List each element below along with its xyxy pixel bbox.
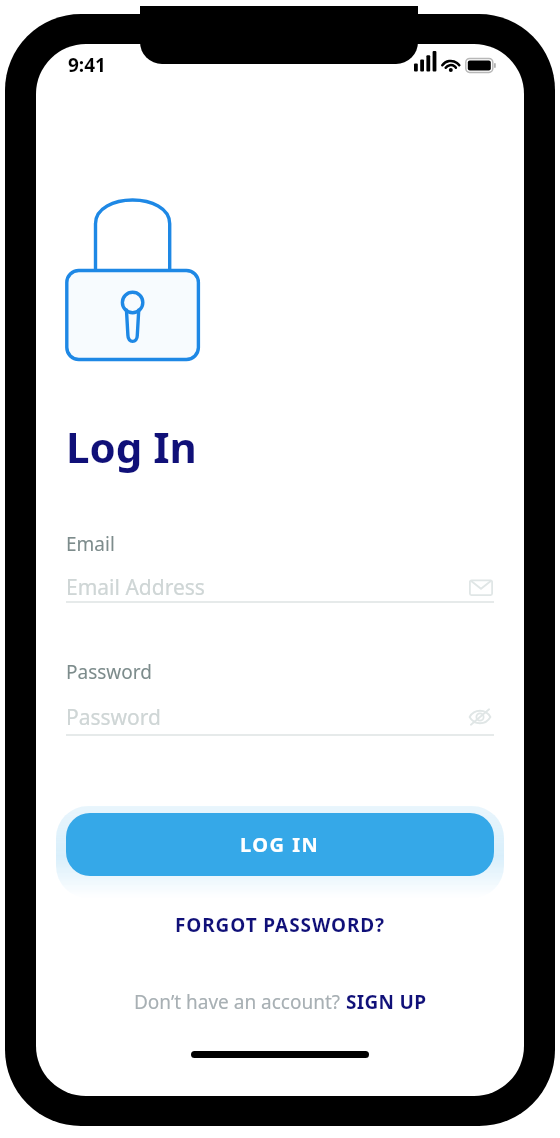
staticText: FORGOT PASSWORD? xyxy=(175,912,386,938)
button[interactable]: LOG IN xyxy=(66,813,494,876)
staticText: Email Address xyxy=(66,573,205,602)
staticText: Password xyxy=(66,703,161,732)
staticText: LOG IN xyxy=(240,831,320,858)
button[interactable]: Show password xyxy=(466,703,494,731)
staticText: Password xyxy=(66,659,152,685)
button[interactable]: Password xyxy=(66,700,494,734)
staticText: Email xyxy=(66,531,115,557)
staticText: Don’t have an account? xyxy=(134,989,346,1015)
other: Email xyxy=(468,574,494,600)
staticText: 9:41 xyxy=(68,52,106,78)
staticText: Log In xyxy=(66,418,197,475)
button[interactable]: FORGOT PASSWORD? xyxy=(66,905,494,945)
staticText: SIGN UP xyxy=(346,989,427,1015)
button[interactable]: SIGN UP xyxy=(346,989,427,1015)
button[interactable]: Email Address xyxy=(66,570,494,604)
